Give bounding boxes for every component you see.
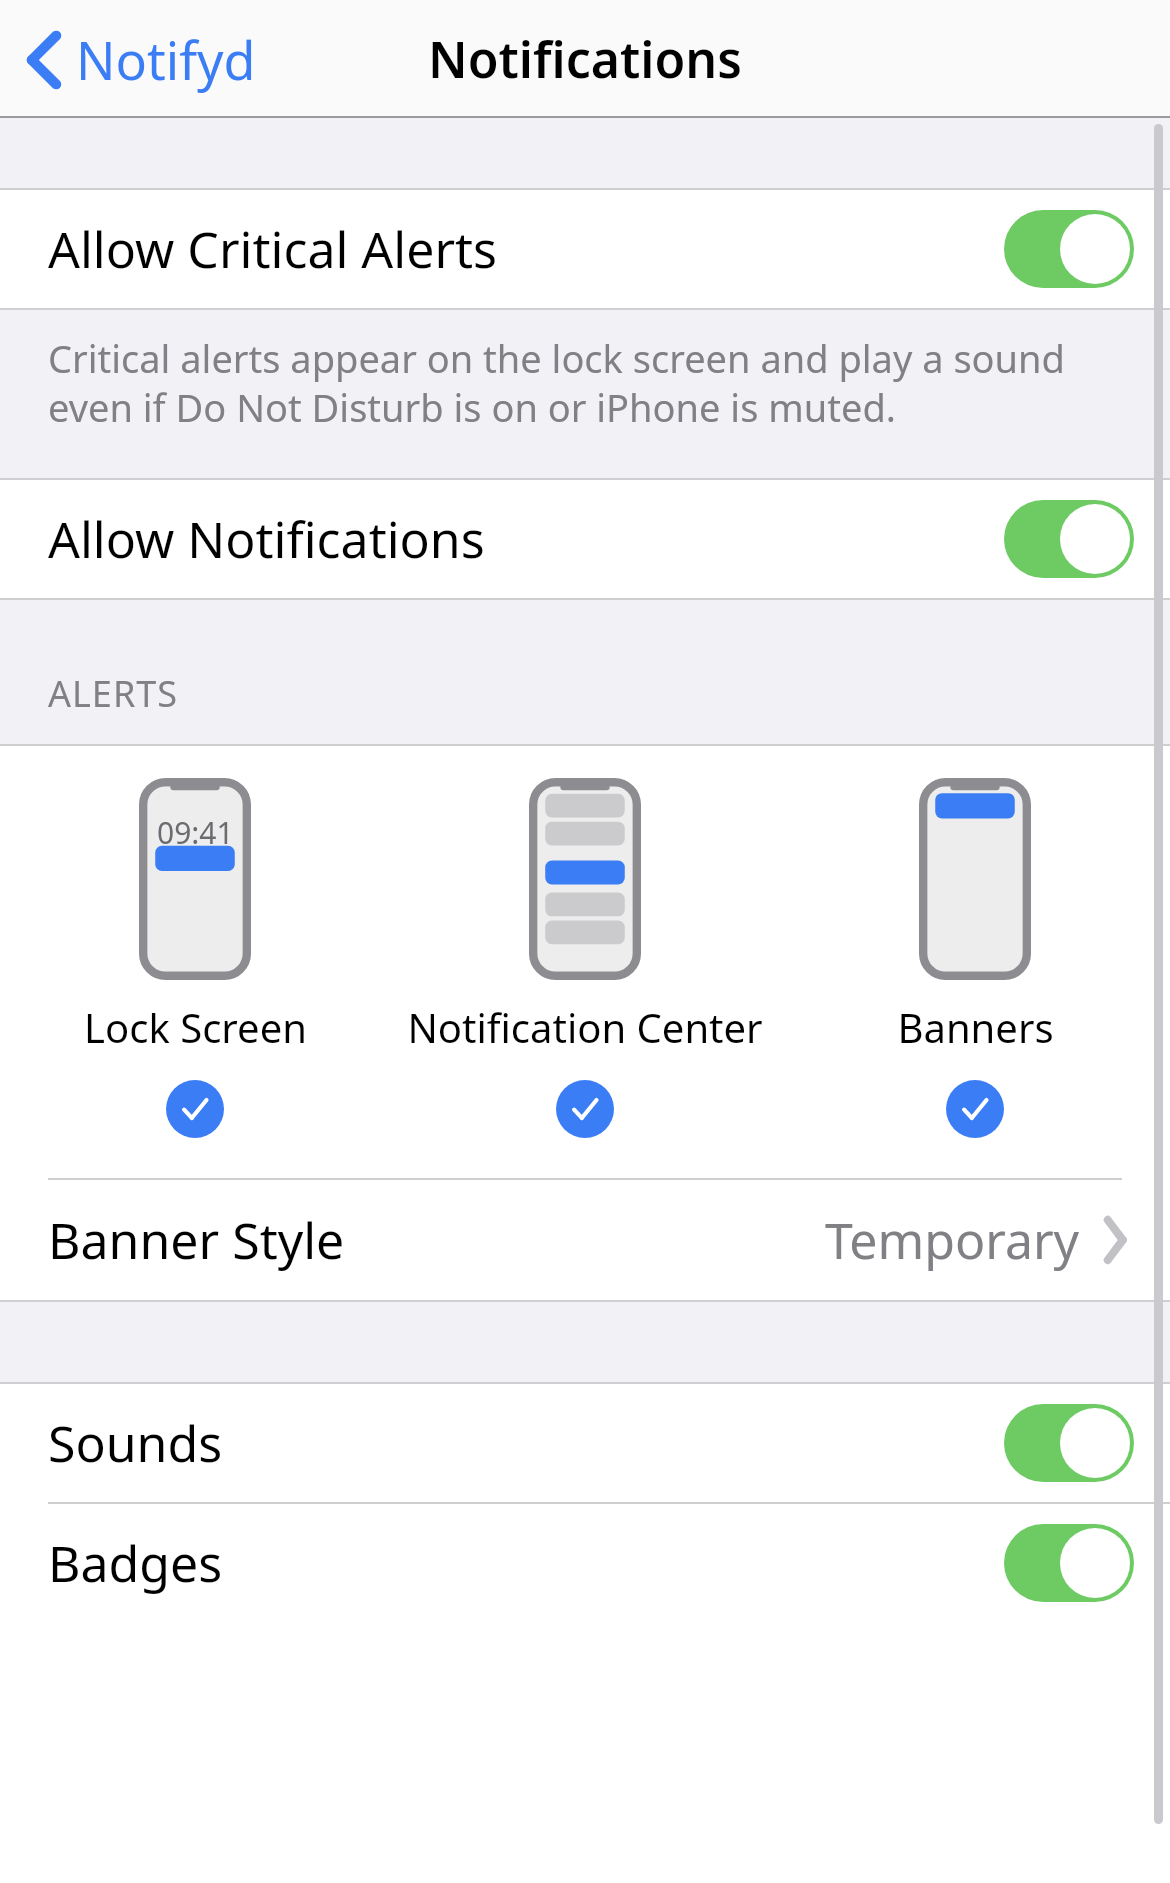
staticText: Sounds — [48, 1409, 223, 1477]
staticText: Notification Center — [407, 1000, 763, 1054]
button[interactable]: 09:41 — [10, 778, 380, 1138]
staticText: Banner Style — [48, 1206, 345, 1274]
button[interactable]: Selected — [946, 1080, 1004, 1138]
button[interactable]: Badges — [0, 1504, 1170, 1622]
button[interactable]: Toggle — [1004, 1524, 1134, 1602]
button[interactable]: Banners — [790, 778, 1160, 1138]
staticText: Allow Notifications — [48, 505, 485, 573]
button[interactable]: Toggle — [1004, 500, 1134, 578]
staticText: 09:41 — [157, 812, 234, 853]
staticText: Temporary — [825, 1206, 1080, 1274]
button[interactable]: Notification Center — [400, 778, 770, 1138]
staticText: Notifyd — [76, 24, 256, 95]
button[interactable]: Notifyd — [18, 12, 264, 107]
button[interactable]: Banner Style — [0, 1180, 1170, 1300]
button[interactable]: Sounds — [0, 1384, 1170, 1502]
staticText: Allow Critical Alerts — [48, 215, 498, 283]
staticText: Banners — [897, 1000, 1054, 1054]
staticText: Notifications — [428, 25, 742, 93]
staticText: Badges — [48, 1529, 223, 1597]
staticText: ALERTS — [48, 669, 179, 718]
button[interactable]: Selected — [166, 1080, 224, 1138]
staticText: Lock Screen — [84, 1000, 307, 1054]
button[interactable]: Toggle — [1004, 1404, 1134, 1482]
button[interactable]: Allow Critical Alerts — [0, 190, 1170, 308]
button[interactable]: Selected — [556, 1080, 614, 1138]
button[interactable]: Allow Notifications — [0, 480, 1170, 598]
staticText: Critical alerts appear on the lock scree… — [48, 332, 1114, 433]
button[interactable]: Toggle — [1004, 210, 1134, 288]
